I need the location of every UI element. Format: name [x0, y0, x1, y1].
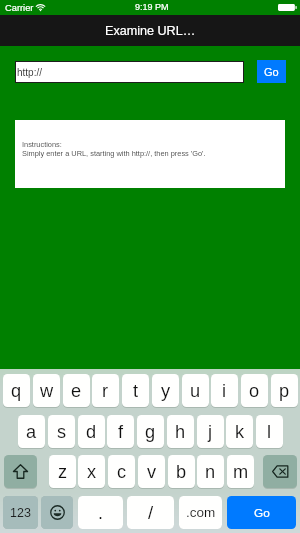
- button[interactable]: m: [227, 455, 254, 488]
- staticText: o: [249, 381, 260, 401]
- button[interactable]: w: [33, 374, 60, 407]
- staticText: x: [87, 462, 97, 482]
- button[interactable]: /: [127, 496, 174, 529]
- button[interactable]: z: [49, 455, 76, 488]
- staticText: http://: [17, 67, 43, 78]
- staticText: 123: [10, 506, 31, 520]
- staticText: y: [161, 381, 171, 401]
- button[interactable]: p: [271, 374, 298, 407]
- button[interactable]: d: [78, 415, 105, 448]
- staticText: m: [233, 462, 249, 482]
- staticText: a: [26, 422, 37, 442]
- button[interactable]: g: [137, 415, 164, 448]
- button[interactable]: l: [256, 415, 283, 448]
- button[interactable]: y: [152, 374, 179, 407]
- button[interactable]: q: [3, 374, 30, 407]
- staticText: z: [58, 462, 68, 482]
- staticText: j: [208, 422, 213, 442]
- staticText: .com: [186, 505, 216, 520]
- button[interactable]: k: [226, 415, 253, 448]
- button[interactable]: .: [78, 496, 123, 529]
- button[interactable]: s: [48, 415, 75, 448]
- button[interactable]: h: [167, 415, 194, 448]
- button[interactable]: Go: [227, 496, 296, 529]
- staticText: k: [235, 422, 245, 442]
- staticText: Examine URL…: [105, 24, 196, 38]
- button[interactable]: r: [92, 374, 119, 407]
- button[interactable]: e: [63, 374, 90, 407]
- button[interactable]: Backspace: [263, 455, 297, 488]
- staticText: p: [279, 381, 290, 401]
- staticText: Go: [264, 66, 279, 78]
- staticText: q: [11, 381, 22, 401]
- staticText: 9:19 PM: [135, 2, 169, 12]
- button[interactable]: c: [108, 455, 135, 488]
- staticText: Carrier: [5, 3, 34, 13]
- button[interactable]: Numbers: [3, 496, 38, 529]
- staticText: /: [148, 502, 154, 523]
- staticText: u: [190, 381, 201, 401]
- staticText: n: [205, 462, 216, 482]
- button[interactable]: a: [18, 415, 45, 448]
- staticText: d: [86, 422, 97, 442]
- staticText: r: [102, 381, 109, 401]
- button[interactable]: o: [241, 374, 268, 407]
- button[interactable]: http://: [15, 61, 244, 83]
- staticText: Simply enter a URL, starting with http:/…: [22, 149, 206, 157]
- button[interactable]: v: [138, 455, 165, 488]
- staticText: f: [118, 422, 124, 442]
- staticText: c: [117, 462, 127, 482]
- staticText: .: [98, 503, 104, 523]
- button[interactable]: Shift: [4, 455, 37, 488]
- button[interactable]: Emoji: [41, 496, 73, 529]
- staticText: g: [145, 422, 156, 442]
- staticText: w: [40, 381, 54, 401]
- staticText: i: [222, 381, 227, 401]
- button[interactable]: f: [107, 415, 134, 448]
- staticText: h: [175, 422, 186, 442]
- staticText: Go: [254, 506, 270, 519]
- staticText: s: [57, 422, 67, 442]
- button[interactable]: i: [211, 374, 238, 407]
- staticText: t: [133, 381, 139, 401]
- staticText: Instructions:: [22, 140, 62, 148]
- button[interactable]: n: [197, 455, 224, 488]
- staticText: v: [147, 462, 157, 482]
- button[interactable]: t: [122, 374, 149, 407]
- button[interactable]: Go: [257, 60, 286, 83]
- button[interactable]: u: [182, 374, 209, 407]
- button[interactable]: j: [197, 415, 224, 448]
- button[interactable]: .com: [179, 496, 222, 529]
- staticText: b: [176, 462, 187, 482]
- button[interactable]: b: [168, 455, 195, 488]
- staticText: l: [267, 422, 272, 442]
- button[interactable]: x: [78, 455, 105, 488]
- staticText: e: [71, 381, 82, 401]
